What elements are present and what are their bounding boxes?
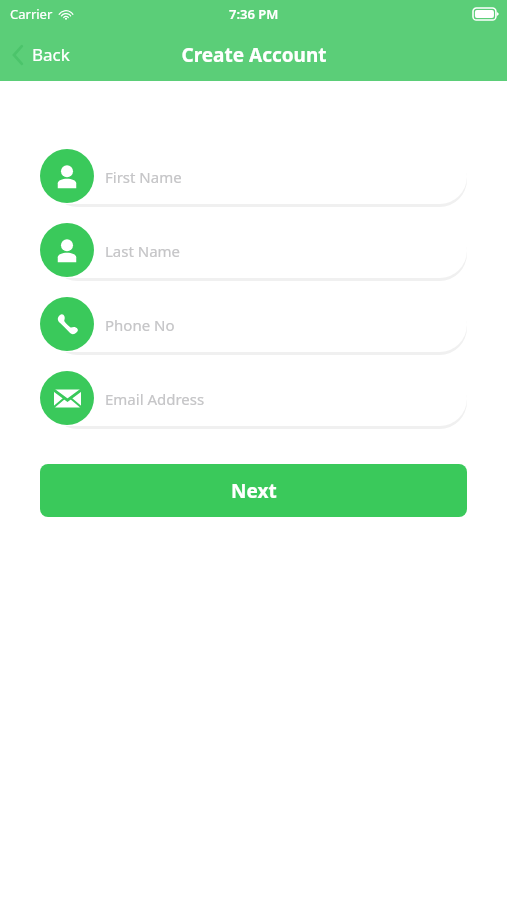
button[interactable]: Back <box>0 35 82 74</box>
button[interactable]: Last Name <box>40 223 467 278</box>
staticText: Create Account <box>181 42 327 68</box>
staticText: Carrier <box>10 5 53 23</box>
staticText: Phone No <box>105 315 175 335</box>
button[interactable]: First Name <box>40 149 467 204</box>
staticText: 7:36 PM <box>229 5 279 23</box>
button[interactable]: Phone No <box>40 297 467 352</box>
staticText: Email Address <box>105 389 205 409</box>
staticText: Last Name <box>105 241 181 261</box>
button[interactable]: Email Address <box>40 371 467 426</box>
staticText: Next <box>231 478 277 504</box>
button[interactable]: Next <box>40 464 467 517</box>
staticText: First Name <box>105 167 182 187</box>
staticText: Back <box>32 43 70 66</box>
